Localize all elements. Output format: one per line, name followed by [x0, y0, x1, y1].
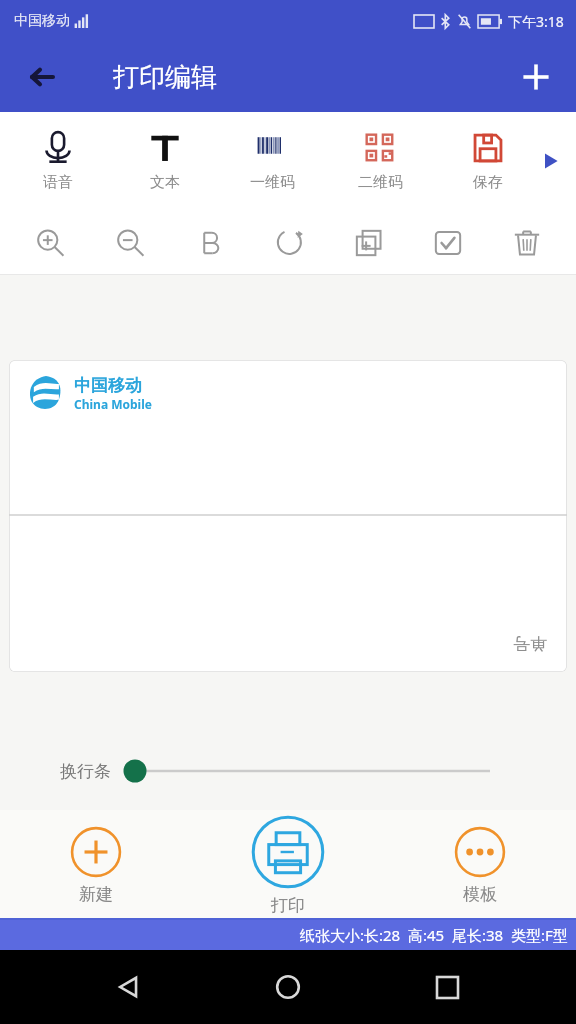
button[interactable]: 文本: [111, 112, 218, 210]
staticText: 模板: [463, 884, 497, 905]
button[interactable]: 新建: [0, 810, 192, 920]
staticText: 一维码: [250, 173, 295, 192]
button[interactable]: 二维码: [326, 112, 434, 210]
staticText: 中国移动: [14, 12, 70, 30]
button[interactable]: 保存: [434, 112, 542, 210]
staticText: 单号: [513, 633, 547, 654]
button[interactable]: 一维码: [218, 112, 326, 210]
staticText: 文本: [150, 173, 180, 192]
button[interactable]: Add: [508, 49, 564, 105]
staticText: 语音: [43, 173, 73, 192]
staticText: 二维码: [358, 173, 403, 192]
staticText: 换行条: [60, 761, 111, 782]
button[interactable]: Back: [99, 957, 159, 1017]
staticText: 新建: [79, 884, 113, 905]
button[interactable]: More tools: [530, 141, 570, 181]
button[interactable]: Rotate 90: [250, 210, 329, 275]
button[interactable]: 语音: [4, 112, 111, 210]
button[interactable]: 模板: [384, 810, 576, 920]
button[interactable]: Confirm: [408, 210, 487, 275]
button[interactable]: Delete: [487, 210, 566, 275]
staticText: 下午3:18: [508, 12, 564, 31]
button[interactable]: Bold: [170, 210, 250, 275]
button[interactable]: Back: [14, 49, 70, 105]
staticText: 打印: [271, 895, 305, 916]
button[interactable]: [125, 756, 490, 786]
button[interactable]: Zoom in: [10, 210, 90, 275]
staticText: 打印编辑: [113, 61, 217, 94]
staticText: 中国移动: [74, 375, 142, 396]
button[interactable]: Copy: [329, 210, 408, 275]
button[interactable]: Recents: [417, 957, 477, 1017]
button[interactable]: 中国移动: [9, 360, 567, 672]
staticText: 保存: [473, 173, 503, 192]
button[interactable]: Zoom out: [90, 210, 170, 275]
staticText: 纸张大小:长:28 高:45 尾长:38 类型:F型: [300, 925, 568, 945]
button[interactable]: 打印: [192, 810, 384, 920]
staticText: China Mobile: [74, 396, 152, 412]
button[interactable]: Home: [258, 957, 318, 1017]
